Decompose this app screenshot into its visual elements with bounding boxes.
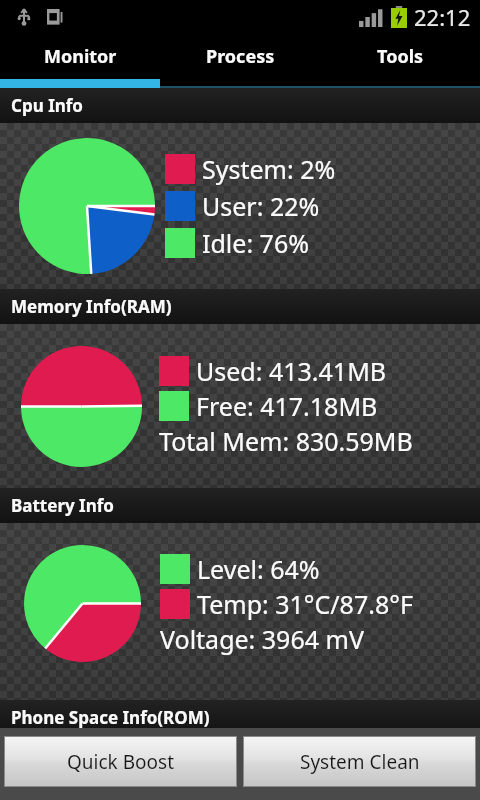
button[interactable]: Process [160,34,320,79]
staticText: Monitor [44,44,117,69]
staticText: Tools [377,44,424,69]
staticText: Used: 413.41MB [196,354,387,388]
staticText: User: 22% [202,189,320,223]
other: SIM card [47,9,64,26]
staticText: Total Mem: 830.59MB [159,424,413,458]
staticText: Voltage: 3964 mV [160,622,364,656]
other: USB connected [14,7,34,27]
staticText: Temp: 31°C/87.8°F [197,587,413,621]
staticText: Cpu Info [11,94,83,117]
staticText: Memory Info(RAM) [11,295,172,318]
staticText: Phone Space Info(ROM) [11,706,210,729]
staticText: Process [206,44,275,69]
button[interactable]: Monitor [0,34,160,79]
staticText: System Clean [300,749,420,775]
staticText: Idle: 76% [202,226,309,260]
staticText: System: 2% [202,152,336,186]
staticText: Quick Boost [67,749,174,775]
staticText: 22:12 [414,2,471,32]
button[interactable]: Quick Boost [5,737,236,786]
staticText: Level: 64% [197,552,320,586]
button[interactable]: System Clean [244,737,475,786]
staticText: Free: 417.18MB [196,389,378,423]
staticText: Battery Info [11,494,114,517]
button[interactable]: Tools [320,34,480,79]
